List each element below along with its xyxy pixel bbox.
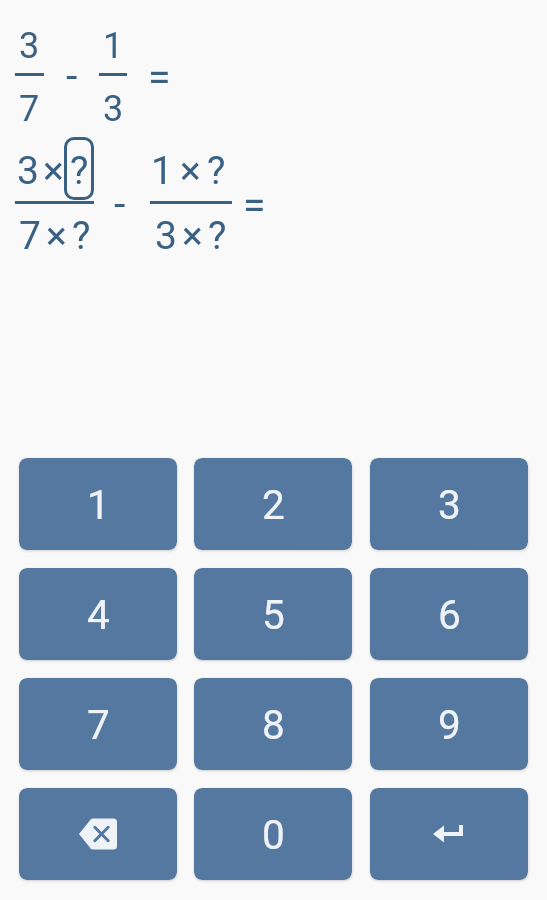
staticText: 7 <box>19 88 40 130</box>
button[interactable] <box>19 788 177 880</box>
button[interactable]: 6 <box>370 568 528 660</box>
staticText: ? <box>72 213 91 259</box>
staticText: 4 <box>87 591 110 638</box>
staticText: 7 <box>87 701 110 748</box>
staticText: 8 <box>262 701 285 748</box>
button[interactable]: 5 <box>194 568 352 660</box>
button[interactable]: 8 <box>194 678 352 770</box>
button[interactable]: 0 <box>194 788 352 880</box>
button[interactable]: 1 <box>19 458 177 550</box>
staticText: ? <box>207 148 226 194</box>
staticText: × <box>180 148 201 194</box>
staticText: 0 <box>262 811 285 858</box>
staticText: 7 <box>19 213 41 259</box>
staticText: × <box>43 148 64 194</box>
staticText: 3 <box>19 25 40 67</box>
staticText: × <box>46 213 67 259</box>
staticText: - <box>114 180 126 228</box>
staticText: 3 <box>438 481 461 528</box>
staticText: × <box>182 213 203 259</box>
staticText: 5 <box>262 591 285 638</box>
staticText: = <box>243 181 266 229</box>
button[interactable]: 4 <box>19 568 177 660</box>
staticText: ? <box>70 148 89 194</box>
button[interactable] <box>370 788 528 880</box>
staticText: 2 <box>262 481 285 528</box>
button[interactable]: 7 <box>19 678 177 770</box>
staticText: ? <box>208 213 227 259</box>
button[interactable]: 3 <box>370 458 528 550</box>
staticText: 3 <box>17 148 39 194</box>
staticText: 9 <box>438 701 461 748</box>
staticText: 1 <box>151 148 173 194</box>
staticText: 1 <box>103 25 124 67</box>
staticText: - <box>66 52 78 100</box>
staticText: = <box>148 53 171 101</box>
staticText: 1 <box>87 481 110 528</box>
staticText: 6 <box>438 591 461 638</box>
button[interactable]: 2 <box>194 458 352 550</box>
staticText: 3 <box>103 88 124 130</box>
button[interactable]: 9 <box>370 678 528 770</box>
staticText: 3 <box>155 213 177 259</box>
